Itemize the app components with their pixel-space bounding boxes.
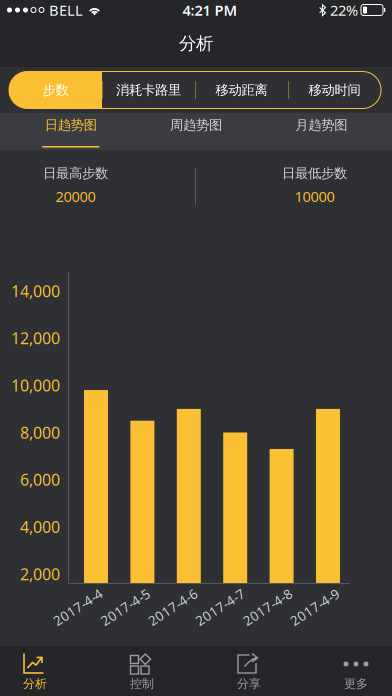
staticText: 周趋势图 [170,117,222,133]
button[interactable]: 分享 [203,646,295,696]
staticText: 2017-4-8 [240,598,296,616]
staticText: 12,000 [11,327,60,349]
staticText: 移动距离 [215,82,267,98]
button[interactable]: 步数 [9,71,102,108]
button[interactable]: 移动距离 [195,71,288,108]
staticText: 控制 [130,676,154,691]
staticText: 月趋势图 [295,117,347,133]
staticText: 步数 [42,82,68,98]
staticText: 4,000 [20,516,60,537]
staticText: 20000 [55,186,95,206]
staticText: 2017-4-4 [50,598,106,616]
staticText: 14,000 [11,280,60,302]
staticText: 2017-4-7 [192,598,248,616]
button[interactable]: 控制 [96,646,188,696]
staticText: 4:21 PM [182,0,237,20]
staticText: 22% [330,0,358,20]
button[interactable]: 月趋势图 [259,113,384,150]
staticText: 日趋势图 [45,117,97,133]
staticText: 更多 [344,676,368,691]
staticText: 8,000 [20,422,60,443]
staticText: 日最低步数 [282,165,347,181]
staticText: BELL [49,0,83,20]
staticText: 2017-4-9 [287,598,343,616]
button[interactable]: 周趋势图 [133,113,259,150]
staticText: 10,000 [11,375,60,396]
staticText: 消耗卡路里 [116,82,181,98]
staticText: 移动时间 [308,82,360,98]
button[interactable]: 消耗卡路里 [102,71,195,108]
staticText: 分享 [237,676,261,691]
button[interactable]: 日趋势图 [8,113,133,150]
staticText: 日最高步数 [43,165,108,181]
staticText: 2017-4-6 [145,598,201,616]
staticText: 2017-4-5 [97,598,153,616]
staticText: 分析 [179,33,213,54]
staticText: 分析 [23,676,47,691]
staticText: 6,000 [20,469,60,490]
button[interactable]: 分析 [0,646,81,696]
staticText: 10000 [294,186,334,206]
button[interactable]: 移动时间 [288,71,381,108]
button[interactable]: 更多 [310,646,392,696]
staticText: 2,000 [20,563,60,585]
